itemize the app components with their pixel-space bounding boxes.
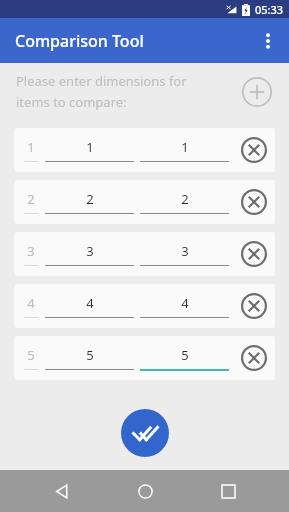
button[interactable]: Compare [121, 409, 169, 457]
button[interactable]: 2 [45, 190, 134, 214]
staticText: 05:33 [255, 2, 284, 17]
button[interactable]: Remove row 5 [235, 339, 273, 377]
button[interactable]: 3 [14, 232, 275, 276]
button[interactable]: Remove row 4 [235, 287, 273, 325]
button[interactable]: Remove row 1 [235, 131, 273, 169]
staticText: 1 [27, 138, 35, 156]
staticText: 4 [27, 294, 35, 312]
button[interactable]: Remove row 3 [235, 235, 273, 273]
staticText: 1 [86, 138, 94, 156]
staticText: 5 [27, 346, 35, 364]
button[interactable]: 2 [140, 190, 229, 214]
staticText: 1 [181, 138, 189, 156]
staticText: 3 [86, 242, 94, 260]
staticText: 5 [181, 346, 189, 364]
button[interactable]: Recent apps [206, 470, 250, 512]
button[interactable]: 3 [140, 242, 229, 266]
button[interactable]: 2 [14, 180, 275, 224]
staticText: Please enter dimensions for [16, 72, 187, 90]
button[interactable]: Home [123, 470, 167, 512]
staticText: 2 [27, 190, 35, 208]
button[interactable]: Remove row 2 [235, 183, 273, 221]
staticText: Comparison Tool [15, 30, 144, 52]
button[interactable]: 4 [14, 284, 275, 328]
button[interactable]: Add item [237, 72, 277, 112]
staticText: 4 [86, 294, 94, 312]
button[interactable]: 5 [45, 346, 134, 370]
button[interactable]: 1 [140, 138, 229, 162]
staticText: 4 [181, 294, 189, 312]
button[interactable]: More options [247, 20, 289, 62]
button[interactable]: 4 [45, 294, 134, 318]
staticText: 3 [181, 242, 189, 260]
button[interactable]: 5 [140, 346, 229, 371]
button[interactable]: 1 [14, 128, 275, 172]
button[interactable]: 5 [14, 336, 275, 380]
staticText: 2 [181, 190, 189, 208]
staticText: items to compare: [16, 93, 127, 111]
button[interactable]: Back [39, 470, 83, 512]
staticText: 2 [86, 190, 94, 208]
staticText: 5 [86, 346, 94, 364]
button[interactable]: 1 [45, 138, 134, 162]
button[interactable]: 4 [140, 294, 229, 318]
button[interactable]: 3 [45, 242, 134, 266]
staticText: 3 [27, 242, 35, 260]
